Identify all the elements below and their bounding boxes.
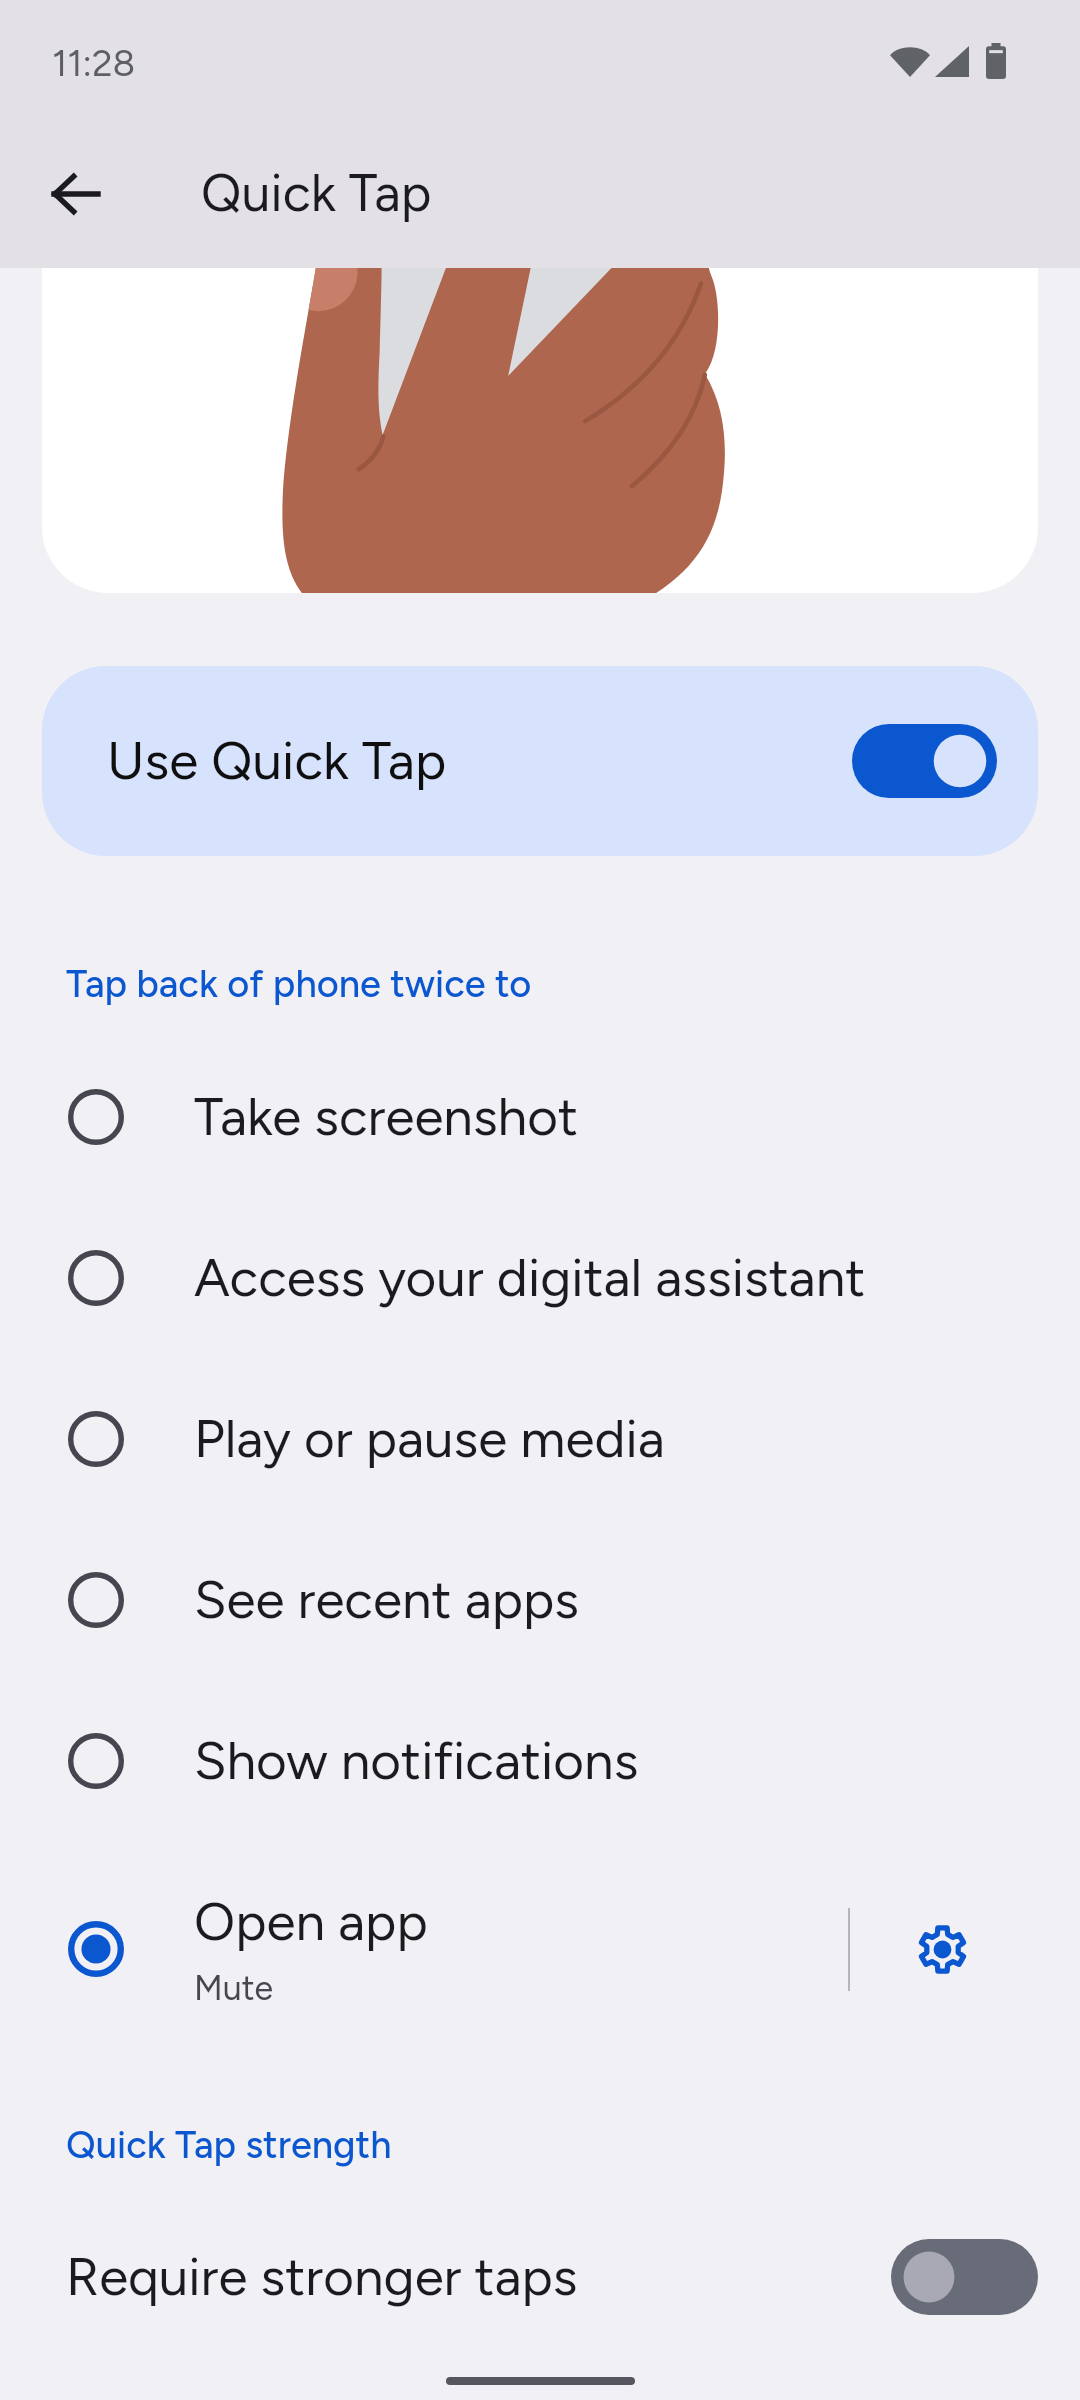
button[interactable]: Require stronger taps	[0, 2203, 1080, 2351]
button[interactable]: Back	[31, 150, 119, 238]
button[interactable]: Show notifications	[0, 1680, 1080, 1841]
button[interactable]: Take screenshot	[0, 1036, 1080, 1197]
button[interactable]: See recent apps	[0, 1519, 1080, 1680]
button[interactable]: Open app	[0, 1841, 849, 2057]
staticText: Require stronger taps	[66, 2245, 578, 2309]
staticText: Take screenshot	[194, 1085, 578, 1149]
button[interactable]: Play or pause media	[0, 1358, 1080, 1519]
staticText: Use Quick Tap	[107, 729, 447, 793]
staticText: Mute	[194, 1968, 274, 2009]
staticText: Play or pause media	[194, 1407, 665, 1471]
button[interactable]: Access your digital assistant	[0, 1197, 1080, 1358]
staticText: 11:28	[52, 41, 136, 85]
staticText: Tap back of phone twice to	[66, 961, 532, 1007]
button[interactable]: Settings	[851, 1841, 1034, 2057]
button[interactable]: Use Quick Tap	[42, 666, 1038, 856]
staticText: Access your digital assistant	[194, 1246, 866, 1310]
staticText: Quick Tap strength	[66, 2122, 392, 2168]
staticText: Quick Tap	[201, 162, 432, 224]
staticText: Open app	[194, 1890, 428, 1954]
staticText: Show notifications	[194, 1729, 639, 1793]
staticText: See recent apps	[194, 1568, 580, 1632]
